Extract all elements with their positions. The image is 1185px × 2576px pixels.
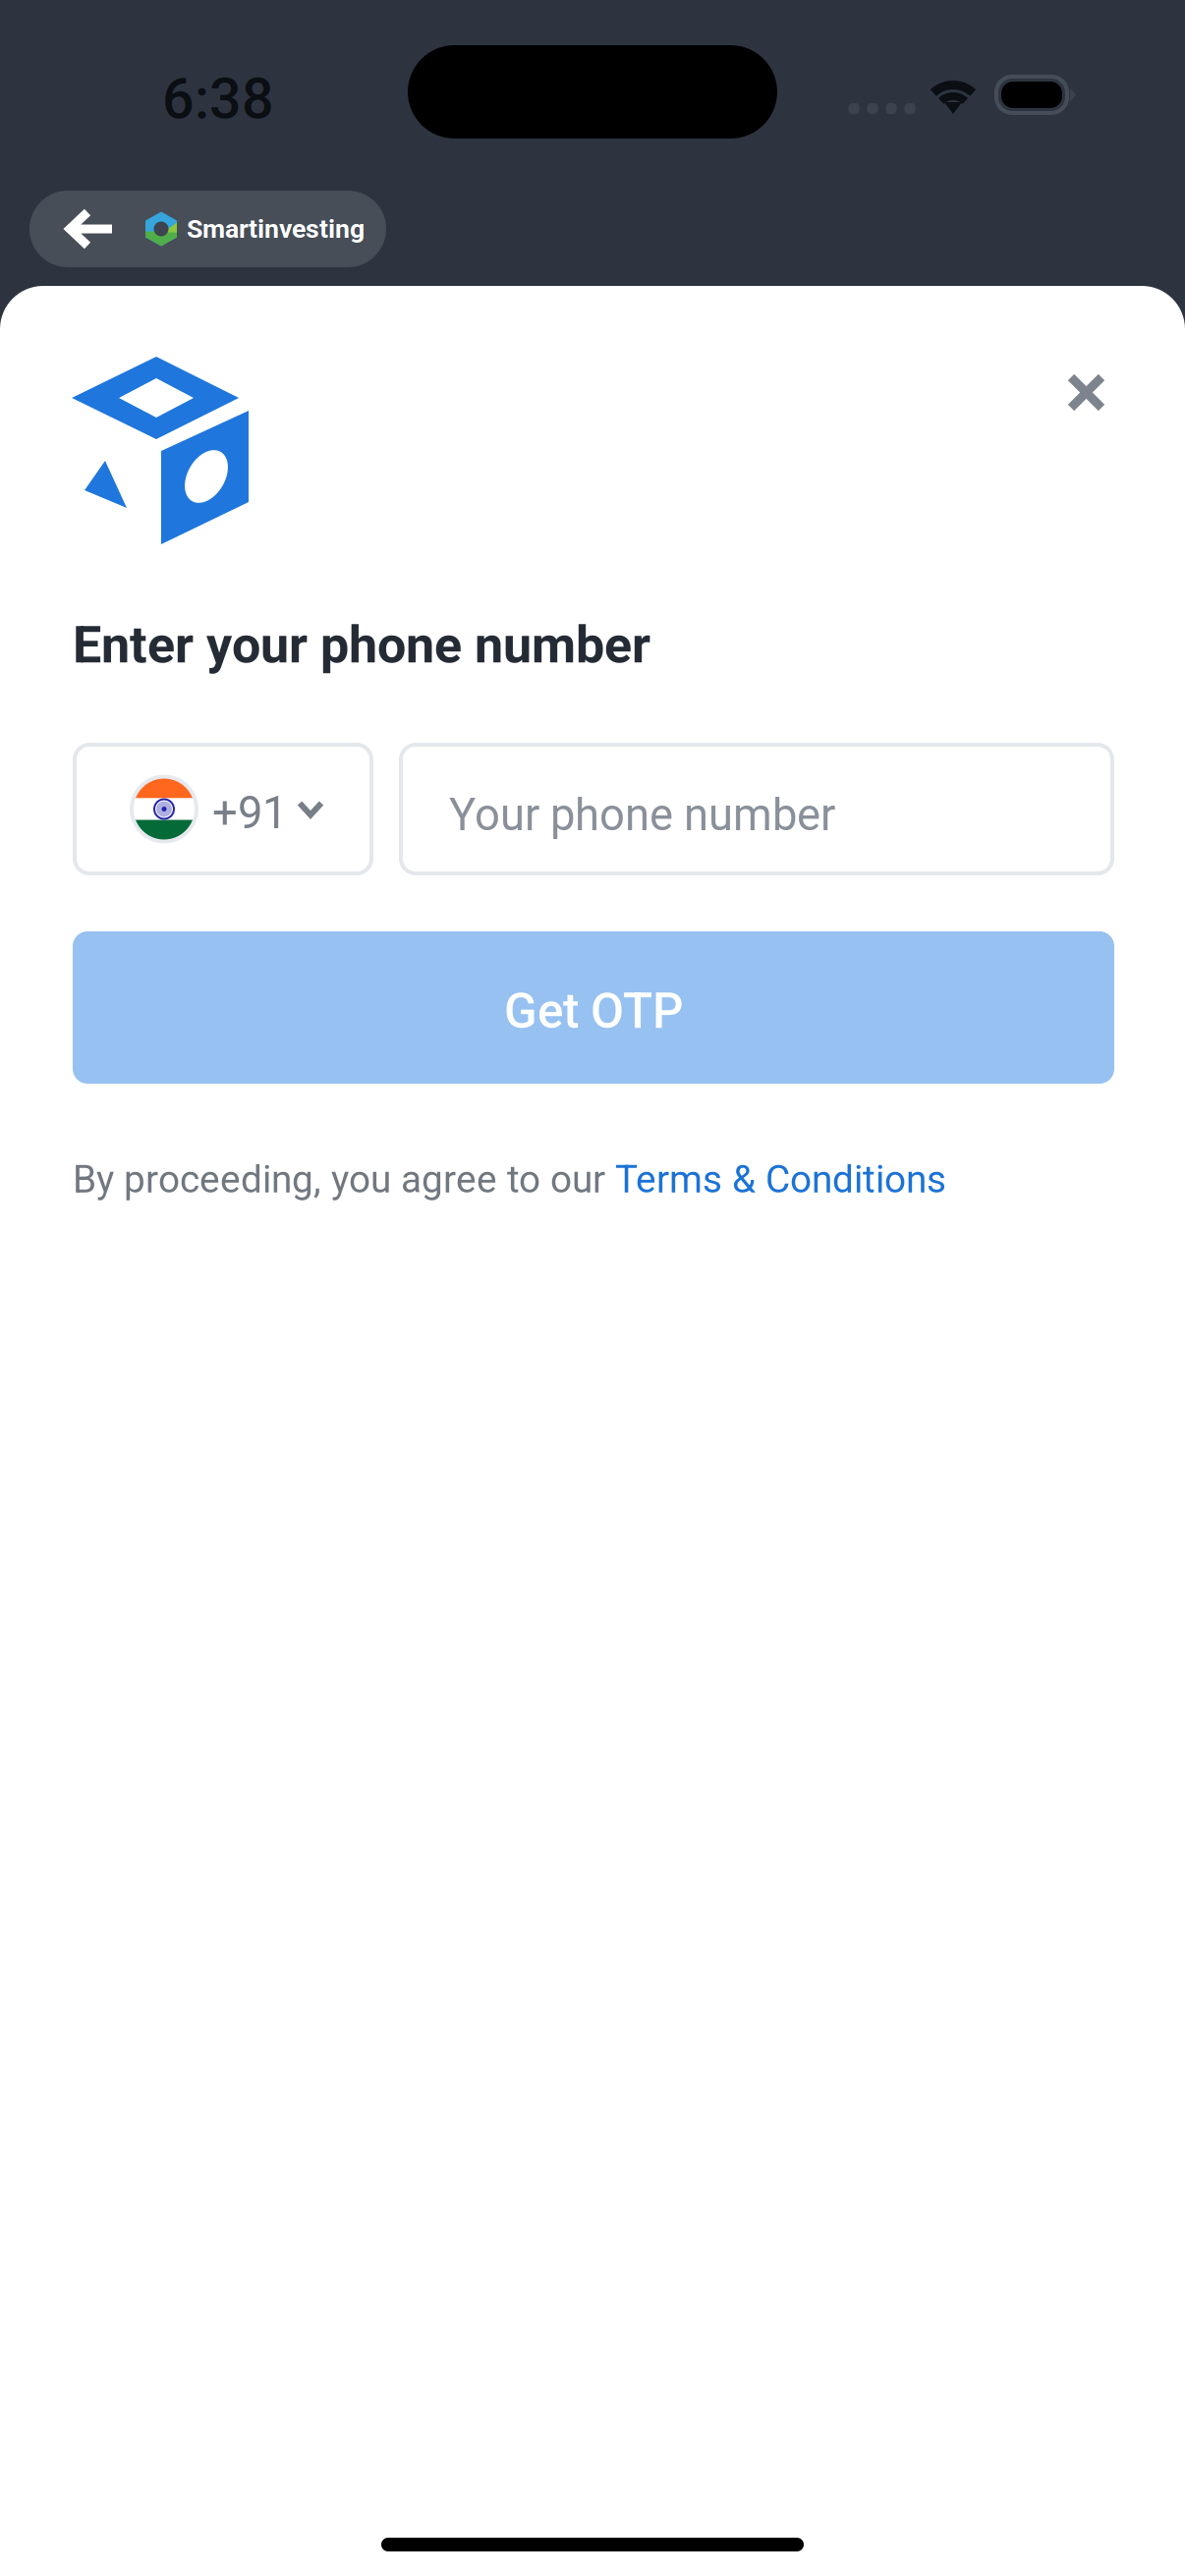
button[interactable]: Smartinvesting xyxy=(29,191,386,267)
staticText: Terms & Conditions xyxy=(615,1157,946,1202)
staticText: By proceeding, you agree to our xyxy=(73,1157,615,1202)
staticText: 6:38 xyxy=(162,66,274,132)
button[interactable]: Country code +91 xyxy=(73,743,373,875)
staticText: Your phone number xyxy=(449,789,835,841)
staticText: Smartinvesting xyxy=(187,214,365,244)
button[interactable]: Get OTP xyxy=(73,931,1114,1084)
staticText: Enter your phone number xyxy=(73,615,650,675)
button[interactable]: Your phone number xyxy=(399,743,1114,875)
button[interactable]: Close xyxy=(1044,351,1128,434)
button[interactable]: Terms & Conditions xyxy=(615,1157,946,1202)
staticText: Get OTP xyxy=(504,983,683,1040)
staticText: +91 xyxy=(212,787,287,839)
